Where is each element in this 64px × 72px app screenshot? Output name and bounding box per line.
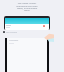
button[interactable]: Overview: [7, 38, 47, 72]
button[interactable]: Get started: [3, 31, 18, 34]
staticText: Tap. Swipe. Create. Everything your team…: [13, 2, 41, 11]
staticText: Overview: [9, 39, 19, 42]
button[interactable]: Product preview: [5, 18, 49, 30]
staticText: Get started: [6, 31, 18, 34]
